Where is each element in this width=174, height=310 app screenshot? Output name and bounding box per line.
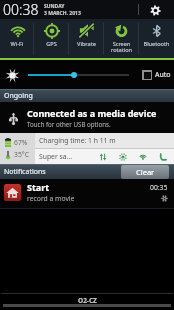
staticText: record a movie [27, 194, 75, 203]
staticText: 00:38 [3, 0, 39, 19]
staticText: Touch for other USB options. [27, 120, 111, 128]
button[interactable]: Bluetooth [139, 19, 174, 58]
staticText: Vibrate [69, 40, 104, 48]
staticText: 00:35 [150, 183, 168, 192]
button[interactable]: Wi-Fi [0, 19, 34, 58]
staticText: Charging time: 1 h 11 m [39, 136, 116, 145]
staticText: Screen rotation [104, 40, 139, 54]
button[interactable]: Settings [148, 3, 162, 17]
staticText: Connected as a media device [27, 107, 157, 119]
staticText: 67% [14, 138, 28, 147]
other: Brightness [4, 67, 20, 83]
staticText: GPS [34, 40, 69, 48]
button[interactable]: Screen rotation [104, 19, 139, 58]
staticText: Notifications [4, 167, 46, 177]
button[interactable]: Connected as a media device [0, 102, 174, 133]
staticText: Auto [155, 70, 171, 80]
button[interactable]: GPS [34, 19, 69, 58]
staticText: SUNDAY [44, 3, 65, 10]
staticText: Wi-Fi [0, 40, 34, 48]
staticText: Super sa... [39, 152, 73, 161]
button[interactable]: Auto [142, 70, 171, 80]
button[interactable] [28, 69, 129, 81]
staticText: O2-CZ [78, 296, 97, 305]
staticText: Clear [136, 167, 155, 177]
staticText: Ongoing [4, 91, 33, 101]
staticText: 35°C [14, 150, 29, 159]
staticText: Start [27, 181, 50, 193]
button[interactable]: Vibrate [69, 19, 104, 58]
button[interactable]: Start [0, 179, 174, 209]
button[interactable]: Charging time: 1 h 11 m [35, 133, 174, 148]
staticText: Bluetooth [139, 40, 174, 48]
button[interactable]: Clear [121, 165, 169, 179]
staticText: 3 MARCH. 2013 [44, 10, 81, 17]
